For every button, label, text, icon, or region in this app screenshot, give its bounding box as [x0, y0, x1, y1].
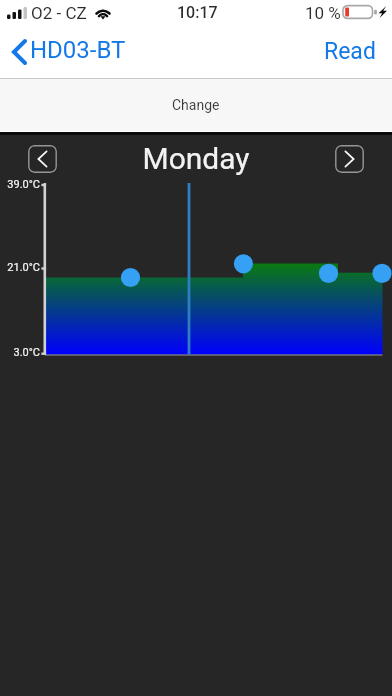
staticText: 10:17 — [177, 3, 218, 22]
button[interactable]: HD03-BT — [4, 33, 134, 71]
staticText: 21.0°C — [0, 261, 40, 274]
staticText: 39.0°C — [0, 178, 40, 191]
staticText: 10 % — [305, 3, 341, 23]
staticText: Read — [324, 38, 376, 65]
staticText: O2 - CZ — [31, 3, 87, 23]
staticText: Monday — [0, 141, 392, 176]
button[interactable]: Previous day — [28, 145, 57, 173]
staticText: 3.0°C — [0, 346, 40, 359]
button[interactable]: Change — [0, 79, 392, 131]
button[interactable]: Read — [310, 33, 388, 71]
staticText: HD03-BT — [30, 36, 126, 64]
button[interactable]: Next day — [335, 145, 364, 173]
staticText: Change — [172, 97, 220, 113]
